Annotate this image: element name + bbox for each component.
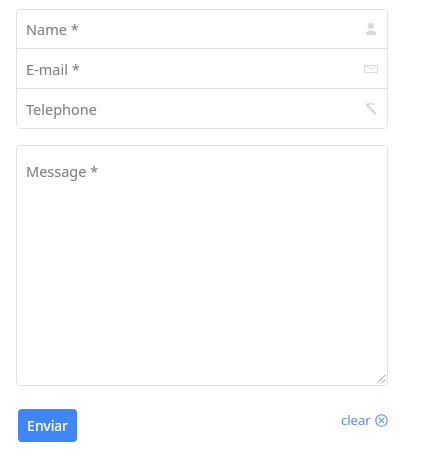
staticText: Message * xyxy=(26,161,99,181)
button[interactable]: Message * xyxy=(16,145,388,386)
button[interactable]: clear xyxy=(341,410,388,430)
staticText: clear xyxy=(341,411,371,429)
other: E-mail xyxy=(364,62,378,76)
staticText: Name * xyxy=(26,19,79,39)
other: Name xyxy=(364,22,378,36)
other: Clear form xyxy=(375,414,388,427)
button[interactable]: Telephone xyxy=(16,89,388,129)
button[interactable]: Name * xyxy=(16,9,388,48)
button[interactable]: E-mail * xyxy=(16,49,388,88)
staticText: Telephone xyxy=(26,99,97,119)
staticText: E-mail * xyxy=(26,59,80,79)
other: Telephone xyxy=(364,102,378,116)
button[interactable]: Enviar xyxy=(18,409,77,442)
staticText: Enviar xyxy=(27,416,68,435)
